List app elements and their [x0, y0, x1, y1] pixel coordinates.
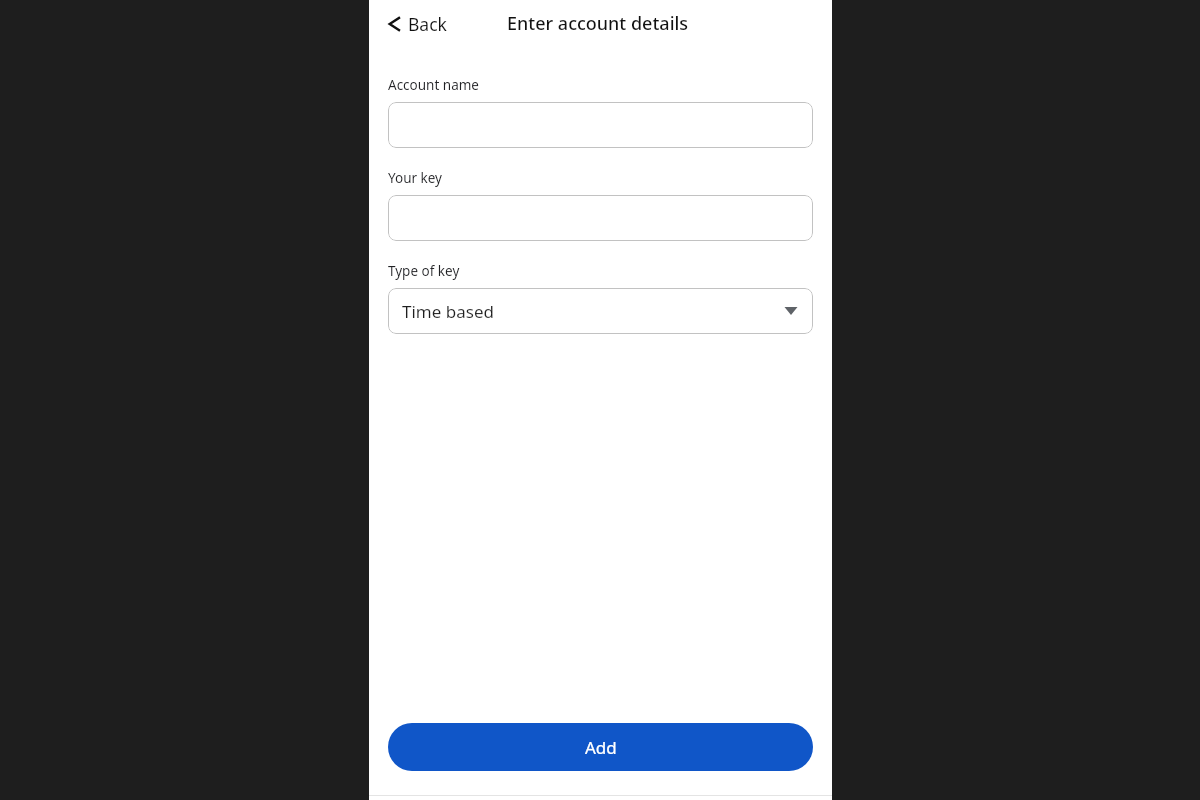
button[interactable]	[388, 195, 813, 241]
button[interactable]: Add	[388, 723, 813, 771]
button[interactable]	[388, 102, 813, 148]
staticText: Type of key	[388, 262, 460, 280]
button[interactable]: Back	[383, 8, 451, 40]
staticText: Back	[408, 12, 447, 36]
staticText: Account name	[388, 76, 479, 94]
button[interactable]: Time based	[388, 288, 813, 334]
staticText: Your key	[388, 169, 442, 187]
staticText: Time based	[402, 300, 494, 323]
staticText: Add	[585, 736, 617, 759]
staticText: Enter account details	[507, 11, 689, 36]
